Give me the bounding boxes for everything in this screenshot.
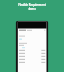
- staticText: demo: [28, 7, 36, 10]
- staticText: Flexible Requirement: [18, 3, 46, 7]
